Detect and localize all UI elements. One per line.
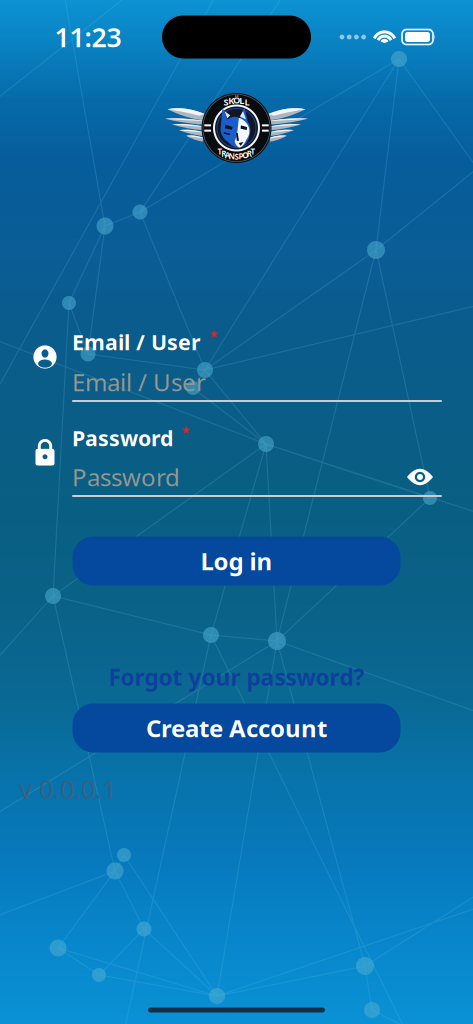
staticText: P bbox=[238, 151, 243, 161]
staticText: v 0.0.0.1 bbox=[19, 772, 116, 806]
button[interactable]: Forgot your password? bbox=[96, 662, 376, 692]
staticText: O bbox=[242, 150, 248, 160]
staticText: 11:23 bbox=[54, 19, 121, 55]
staticText: Email / User bbox=[72, 328, 201, 356]
staticText: R bbox=[247, 148, 252, 159]
staticText: S bbox=[234, 151, 238, 162]
staticText: Log in bbox=[200, 545, 272, 577]
staticText: R bbox=[221, 148, 226, 159]
button[interactable]: Show password bbox=[398, 460, 442, 494]
staticText: Password bbox=[72, 461, 180, 493]
staticText: L bbox=[239, 94, 244, 106]
button[interactable]: Create Account bbox=[72, 703, 400, 752]
staticText: Password bbox=[72, 424, 173, 452]
staticText: Ö bbox=[233, 94, 240, 106]
button[interactable]: Log in bbox=[72, 536, 400, 585]
staticText: T bbox=[251, 146, 256, 157]
staticText: Email / User bbox=[72, 366, 206, 398]
staticText: K bbox=[228, 94, 234, 106]
staticText: N bbox=[229, 151, 236, 161]
staticText: Forgot your password? bbox=[108, 662, 364, 692]
staticText: A bbox=[225, 150, 231, 160]
staticText: L bbox=[244, 96, 249, 108]
staticText: T bbox=[217, 146, 222, 157]
staticText: Create Account bbox=[146, 712, 327, 744]
staticText: S bbox=[223, 96, 228, 108]
